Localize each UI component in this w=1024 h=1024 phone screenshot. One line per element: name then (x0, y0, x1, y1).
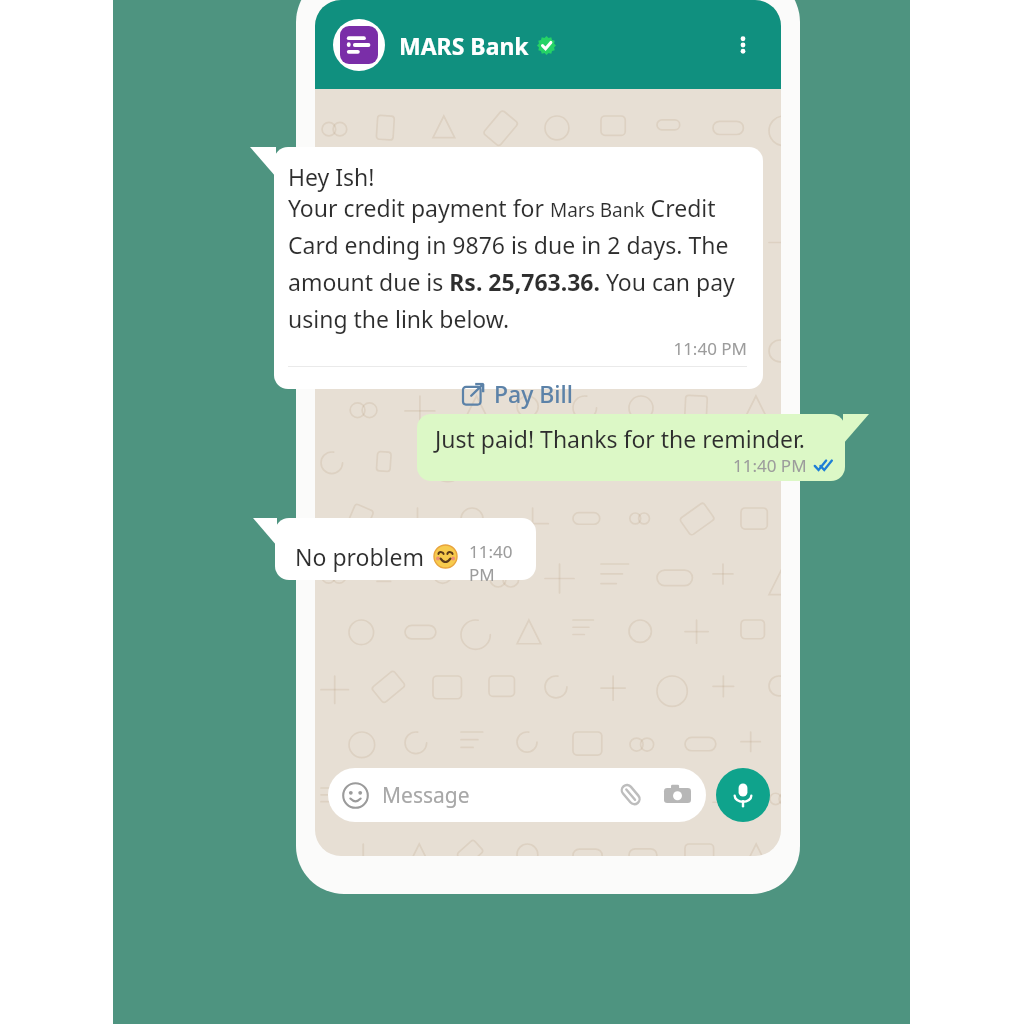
staticText: Pay Bill (494, 378, 573, 409)
staticText: No problem (295, 541, 425, 572)
staticText: 11:40 PM (733, 454, 807, 477)
button[interactable]: Pay Bill (288, 367, 747, 420)
button[interactable]: Voice message (716, 768, 770, 822)
button[interactable]: More options (723, 25, 763, 65)
staticText: 11:40 PM (288, 337, 747, 360)
staticText: Hey Ish! (288, 161, 375, 192)
button[interactable]: MARS Bank (315, 0, 781, 89)
button[interactable]: Message (328, 768, 706, 822)
button[interactable]: Attach (616, 780, 646, 810)
staticText: Message (382, 781, 470, 810)
staticText: MARS Bank (399, 30, 529, 61)
button[interactable]: Camera (662, 780, 692, 810)
staticText: Your credit payment for Mars Bank Credit… (288, 192, 747, 335)
staticText: Just paid! Thanks for the reminder. (435, 423, 806, 454)
staticText: 11:40 PM (469, 540, 536, 586)
